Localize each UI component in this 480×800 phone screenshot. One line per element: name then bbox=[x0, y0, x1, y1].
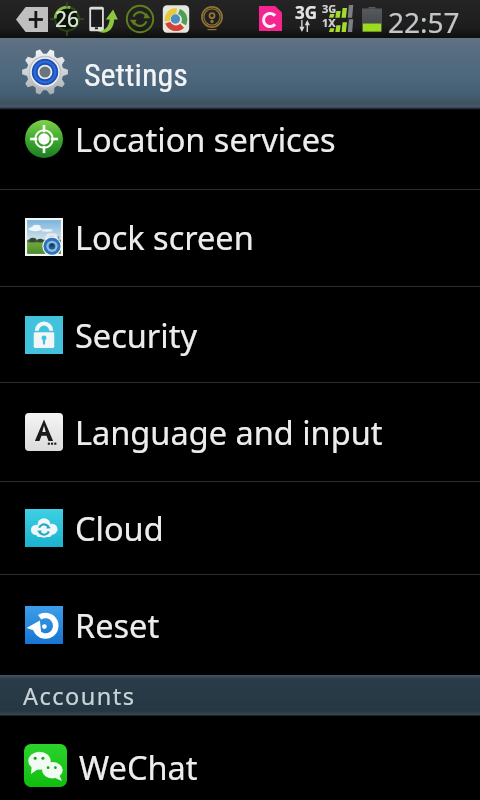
button[interactable]: Language and input bbox=[0, 383, 480, 481]
staticText: Security bbox=[75, 313, 197, 357]
staticText: 26 bbox=[55, 5, 80, 34]
staticText: Cloud bbox=[75, 506, 164, 550]
button[interactable]: Cloud bbox=[0, 482, 480, 574]
staticText: WeChat bbox=[79, 745, 198, 789]
staticText: Lock screen bbox=[75, 215, 254, 259]
staticText: 22:57 bbox=[388, 3, 460, 41]
button[interactable]: Location services bbox=[0, 110, 480, 189]
button[interactable]: Security bbox=[0, 287, 480, 382]
staticText: Settings bbox=[84, 56, 188, 94]
button[interactable]: Reset bbox=[0, 575, 480, 675]
staticText: 1X bbox=[322, 15, 336, 30]
staticText: Location services bbox=[75, 117, 336, 161]
button[interactable]: Lock screen bbox=[0, 190, 480, 286]
staticText: Accounts bbox=[23, 680, 136, 712]
staticText: 3G bbox=[322, 1, 337, 16]
staticText: Language and input bbox=[75, 410, 383, 454]
staticText: 3G bbox=[295, 1, 318, 24]
staticText: Reset bbox=[75, 603, 160, 647]
button[interactable]: WeChat bbox=[0, 716, 480, 800]
